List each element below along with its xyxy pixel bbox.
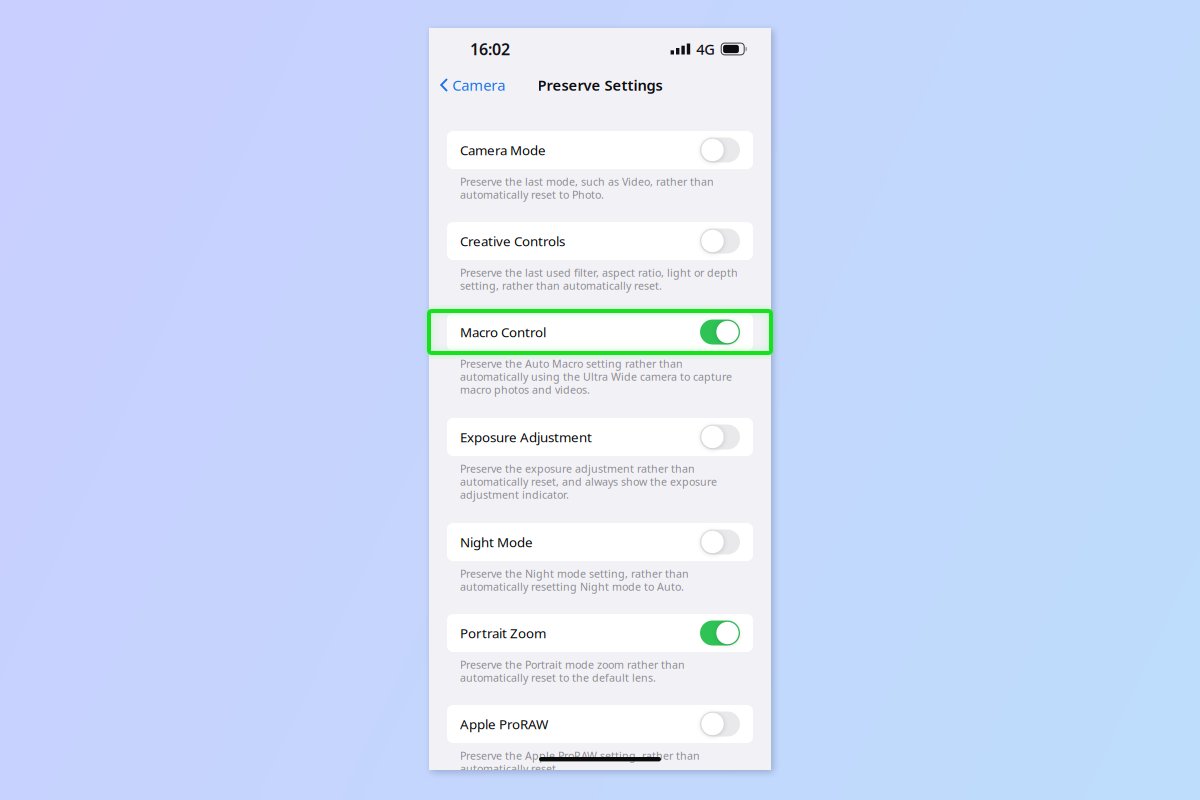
button[interactable]: On xyxy=(447,313,753,351)
staticText: 16:02 xyxy=(470,38,510,60)
button[interactable]: On xyxy=(447,614,753,652)
button[interactable]: Off xyxy=(447,418,753,456)
button[interactable]: Off xyxy=(447,131,753,169)
staticText: Portrait Zoom xyxy=(460,624,546,642)
staticText: macro photos and videos. xyxy=(460,382,590,397)
staticText: Preserve the last used filter, aspect ra… xyxy=(460,265,738,280)
staticText: Preserve the Portrait mode zoom rather t… xyxy=(460,657,685,672)
staticText: automatically reset. xyxy=(460,761,559,776)
staticText: automatically reset to Photo. xyxy=(460,187,604,202)
staticText: 4G xyxy=(696,39,715,59)
staticText: Exposure Adjustment xyxy=(460,428,592,446)
staticText: Creative Controls xyxy=(460,232,565,250)
staticText: Preserve Settings xyxy=(537,75,662,95)
staticText: automatically reset, and always show the… xyxy=(460,474,717,489)
button[interactable]: Back to Camera xyxy=(438,70,507,100)
staticText: setting, rather than automatically reset… xyxy=(460,278,662,293)
staticText: Preserve the Auto Macro setting rather t… xyxy=(460,356,683,371)
button[interactable]: Off xyxy=(447,705,753,743)
staticText: automatically reset to the default lens. xyxy=(460,670,656,685)
staticText: Camera xyxy=(452,75,505,95)
staticText: Preserve the last mode, such as Video, r… xyxy=(460,174,714,189)
staticText: Preserve the Night mode setting, rather … xyxy=(460,566,689,581)
staticText: automatically using the Ultra Wide camer… xyxy=(460,369,732,384)
staticText: adjustment indicator. xyxy=(460,487,569,502)
button[interactable]: Off xyxy=(447,222,753,260)
staticText: Preserve the Apple ProRAW setting, rathe… xyxy=(460,748,700,763)
staticText: Apple ProRAW xyxy=(460,715,548,733)
staticText: automatically resetting Night mode to Au… xyxy=(460,579,684,594)
staticText: Camera Mode xyxy=(460,141,546,159)
staticText: Macro Control xyxy=(460,323,546,341)
button[interactable]: Off xyxy=(447,523,753,561)
staticText: Preserve the exposure adjustment rather … xyxy=(460,461,695,476)
staticText: Night Mode xyxy=(460,533,533,551)
